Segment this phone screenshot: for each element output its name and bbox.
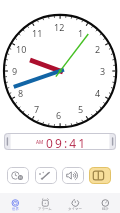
staticText: 09:41 <box>46 135 88 151</box>
button[interactable]: Effects <box>35 167 57 184</box>
button[interactable]: Volume <box>62 167 84 184</box>
staticText: 8 <box>18 87 24 99</box>
button[interactable]: タイマー <box>60 193 90 213</box>
staticText: 2 <box>95 43 101 55</box>
staticText: 9 <box>12 65 18 77</box>
staticText: AM <box>36 139 44 145</box>
staticText: 7 <box>34 103 40 115</box>
staticText: タイマー <box>68 207 82 211</box>
staticText: 3 <box>100 65 106 77</box>
button[interactable]: Split view <box>89 167 111 184</box>
staticText: 1 <box>78 27 84 39</box>
staticText: アラーム <box>38 207 52 211</box>
staticText: 10 <box>16 43 27 55</box>
button[interactable]: Snooze <box>7 167 29 184</box>
staticText: 時計 <box>102 207 109 211</box>
staticText: 6 <box>56 109 62 121</box>
staticText: 11 <box>32 27 43 39</box>
staticText: 4 <box>95 87 101 99</box>
button[interactable]: Time 09:41 AM <box>4 133 116 150</box>
button[interactable]: 時計 <box>90 193 120 213</box>
button[interactable]: アラーム <box>30 193 60 213</box>
staticText: 12 <box>54 21 65 33</box>
staticText: 世界 <box>12 207 19 211</box>
button[interactable]: 世界 <box>0 193 30 213</box>
staticText: 5 <box>78 103 84 115</box>
